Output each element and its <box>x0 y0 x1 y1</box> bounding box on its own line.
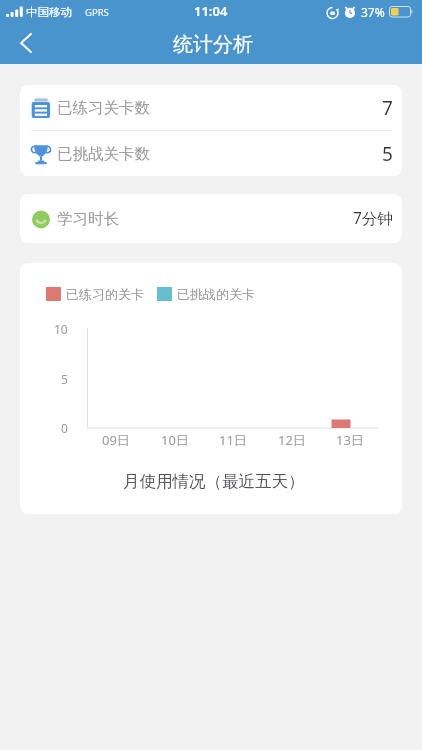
staticText: 已练习关卡数 <box>57 98 150 118</box>
staticText: 13日 <box>336 431 364 449</box>
button[interactable] <box>0 24 52 64</box>
staticText: 已练习的关卡 <box>66 286 144 302</box>
staticText: 11日 <box>219 431 247 449</box>
staticText: 10 <box>54 321 68 337</box>
staticText: 学习时长 <box>57 209 119 229</box>
staticText: 5 <box>61 371 68 387</box>
staticText: 10日 <box>161 431 189 449</box>
staticText: 中国移动 <box>26 5 72 19</box>
staticText: 37% <box>361 4 385 20</box>
button[interactable]: 已挑战关卡数 <box>20 131 402 176</box>
staticText: 7分钟 <box>353 207 393 228</box>
staticText: 已挑战的关卡 <box>177 286 255 302</box>
staticText: 11:04 <box>194 2 228 20</box>
button[interactable]: 已练习关卡数 <box>20 85 402 130</box>
staticText: 月使用情况（最近五天） <box>123 471 305 492</box>
staticText: 已挑战关卡数 <box>57 144 150 164</box>
staticText: GPRS <box>85 6 109 19</box>
staticText: 09日 <box>102 431 130 449</box>
staticText: 0 <box>61 420 68 436</box>
staticText: 5 <box>382 141 393 167</box>
button[interactable]: 学习时长 <box>20 194 402 243</box>
staticText: 12日 <box>278 431 306 449</box>
staticText: 统计分析 <box>173 32 253 57</box>
staticText: 7 <box>382 95 393 121</box>
